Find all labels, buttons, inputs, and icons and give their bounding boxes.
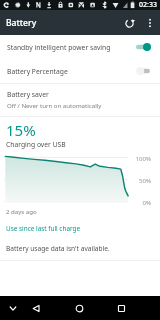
staticText: 2 days ago xyxy=(6,207,37,215)
staticText: 15% xyxy=(6,120,36,140)
button[interactable]: Battery saver xyxy=(0,83,160,116)
staticText: Standby intelligent power saving xyxy=(7,43,136,52)
staticText: 100% xyxy=(131,154,151,162)
staticText: Battery saver xyxy=(7,90,49,99)
button[interactable]: Standby intelligent power saving xyxy=(0,35,160,59)
staticText: 02:33 xyxy=(139,0,157,10)
staticText: Battery usage data isn't available. xyxy=(6,244,110,253)
button[interactable]: Home xyxy=(69,296,89,320)
staticText: 50% xyxy=(131,176,151,184)
button[interactable]: More options xyxy=(140,13,160,33)
button[interactable]: Refresh xyxy=(118,12,140,34)
button[interactable]: Battery Percentage xyxy=(0,59,160,83)
button[interactable]: Hide keyboard xyxy=(4,296,22,320)
staticText: Off / Never turn on automatically xyxy=(7,101,102,109)
staticText: 0% xyxy=(131,198,151,206)
staticText: Charging over USB xyxy=(6,140,66,149)
staticText: Battery Percentage xyxy=(7,67,136,76)
button[interactable]: Use since last full charge xyxy=(6,224,81,233)
staticText: Battery xyxy=(6,17,37,29)
button[interactable]: Recent apps xyxy=(111,296,131,320)
button[interactable]: Back xyxy=(26,296,46,320)
